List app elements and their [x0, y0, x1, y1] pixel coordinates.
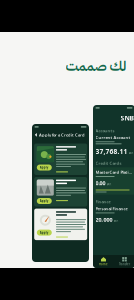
staticText: SNB	[120, 114, 133, 122]
button[interactable]: Apply	[32, 143, 87, 177]
staticText: Apply	[40, 199, 49, 203]
staticText: Apply	[40, 231, 49, 234]
staticText: SAR	[113, 219, 118, 222]
staticText: Accounts	[96, 128, 115, 133]
staticText: SAR	[128, 151, 133, 155]
staticText: Transfer	[119, 262, 130, 266]
staticText: Credit Cards	[96, 160, 122, 166]
staticText: 20,000	[96, 216, 113, 223]
button[interactable]: Apply	[32, 177, 87, 209]
button[interactable]: Transfer	[114, 255, 134, 268]
staticText: 37,768.11	[96, 147, 128, 156]
staticText: Apply for a Credit Card	[39, 132, 85, 137]
staticText: Home	[99, 262, 108, 266]
button[interactable]: Current Account	[93, 135, 134, 160]
staticText: Personal Finance	[96, 206, 128, 211]
staticText: Current Account	[96, 135, 131, 140]
staticText: 0.00	[96, 180, 106, 187]
staticText: لك صممت	[65, 55, 126, 76]
staticText: SAR	[106, 182, 111, 186]
staticText: Apply	[40, 166, 49, 169]
button[interactable]: Home	[93, 255, 114, 268]
staticText: MasterCard Platinum	[96, 169, 132, 175]
button[interactable]: Personal Finance	[93, 206, 134, 228]
button[interactable]: MasterCard Platinum	[93, 167, 134, 199]
staticText: Finance	[96, 199, 111, 204]
button[interactable]: Apply	[32, 209, 87, 242]
